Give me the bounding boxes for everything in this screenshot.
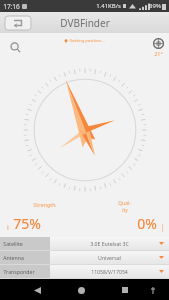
staticText: 17:16 [3,2,20,11]
staticText: 0% [137,214,157,233]
staticText: 75% [13,214,41,233]
staticText: Transponder [3,268,35,275]
staticText: Getting position... [69,38,105,44]
staticText: ity [122,207,128,214]
button[interactable]: Recent apps [116,281,134,299]
staticText: 21° [154,50,163,57]
button[interactable]: Transponder [0,265,169,278]
button[interactable]: Back [28,281,46,299]
other: Compass [19,64,151,196]
button[interactable]: Home [72,281,90,299]
button[interactable]: Satellite [0,237,169,250]
staticText: 3.0E Eutelsat 3C [90,240,129,247]
staticText: Qual- [118,200,131,207]
staticText: Universal [98,254,121,261]
staticText: Strength [33,201,56,208]
staticText: 1.41KB/s [96,2,121,10]
staticText: 89% [149,2,161,10]
button[interactable]: Keyboard [146,283,160,297]
button[interactable]: Strength [4,199,84,237]
button[interactable]: Antenna [0,251,169,264]
button[interactable]: Getting position... [64,38,105,44]
staticText: Antenna [3,254,24,261]
button[interactable]: Search [5,37,25,57]
staticText: Satellite [3,240,23,247]
staticText: i [7,223,9,233]
button[interactable]: Compass heading [153,38,164,57]
staticText: 11058/V/17054 [91,268,128,275]
button[interactable]: Back [3,14,33,32]
button[interactable]: Qual- [84,199,165,237]
staticText: DVBFinder [60,16,110,30]
